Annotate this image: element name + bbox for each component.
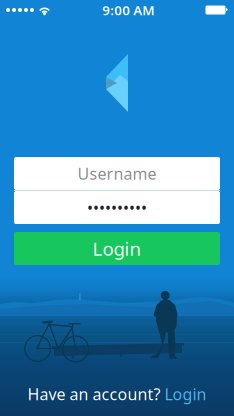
staticText: Login — [164, 383, 206, 405]
staticText: Username — [77, 163, 156, 184]
button[interactable]: Login — [14, 232, 220, 265]
staticText: Login — [92, 236, 141, 261]
staticText: Have an account? — [27, 383, 160, 405]
staticText: •••••••••• — [87, 197, 147, 218]
button[interactable]: •••••••••• — [14, 191, 220, 224]
button[interactable]: Login — [164, 383, 206, 405]
staticText: 9:00 AM — [102, 1, 154, 19]
button[interactable]: Username — [14, 157, 220, 190]
